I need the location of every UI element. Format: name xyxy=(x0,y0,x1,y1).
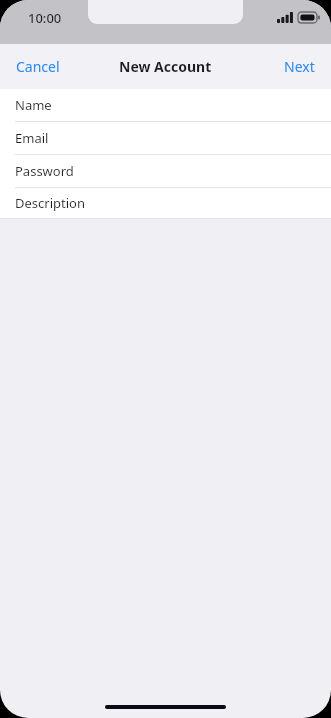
staticText: Password xyxy=(15,162,74,180)
button[interactable]: Email xyxy=(0,122,331,155)
button[interactable]: Name xyxy=(0,89,331,122)
staticText: Name xyxy=(15,96,52,114)
button[interactable]: Cancel xyxy=(0,49,76,84)
staticText: Cancel xyxy=(16,57,60,76)
staticText: Next xyxy=(284,57,315,76)
button[interactable]: Description xyxy=(0,188,331,218)
staticText: 10:00 xyxy=(28,9,62,27)
button[interactable]: Next xyxy=(268,49,331,84)
staticText: Email xyxy=(15,129,49,147)
button[interactable]: Password xyxy=(0,155,331,188)
staticText: New Account xyxy=(119,57,212,76)
staticText: Description xyxy=(15,194,85,212)
